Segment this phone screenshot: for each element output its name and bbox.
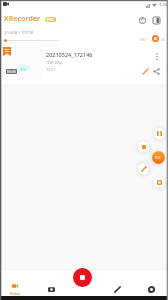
button[interactable]: Video	[1, 283, 29, 298]
button[interactable]: Settings	[149, 13, 163, 27]
staticText: PRO	[47, 17, 55, 22]
button[interactable]: More options	[150, 50, 163, 63]
button[interactable]: Edit	[103, 286, 131, 300]
staticText: XRecorder	[4, 14, 41, 24]
button[interactable]: Stop recording	[73, 268, 92, 287]
staticText: 00:00	[7, 69, 16, 74]
button[interactable]: Screenshot	[154, 177, 165, 188]
button[interactable]: Stop recording	[138, 141, 149, 152]
button[interactable]: Pause recording	[154, 128, 165, 139]
button[interactable]: Help	[135, 13, 149, 27]
staticText: 60	[161, 37, 166, 42]
button[interactable]: Brush	[138, 163, 149, 174]
staticText: 720P 30fps	[46, 61, 63, 65]
button[interactable]: PRO	[45, 17, 56, 22]
button[interactable]: Share	[150, 65, 162, 77]
staticText: HD	[140, 37, 146, 42]
staticText: Video	[1, 291, 29, 296]
button[interactable]: Settings	[137, 286, 165, 300]
staticText: 3:24	[159, 2, 168, 8]
button[interactable]: Screenshot	[37, 286, 65, 300]
button[interactable]: Recorder floating button	[152, 151, 165, 164]
button[interactable]: Recording quality	[136, 33, 166, 45]
staticText: REC	[155, 155, 162, 160]
staticText: 2.54GB / 107GB	[4, 30, 34, 35]
staticText: 17:21	[46, 67, 56, 72]
button[interactable]: Edit	[139, 65, 151, 77]
button[interactable]	[0, 45, 168, 84]
staticText: 20210524_172146	[46, 51, 93, 58]
